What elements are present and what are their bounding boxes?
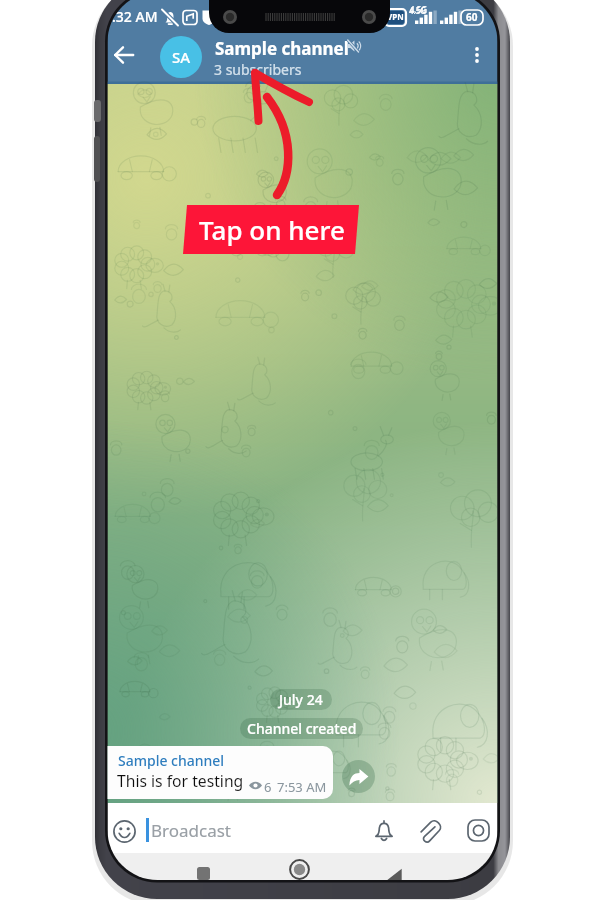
staticText: Channel created (247, 719, 357, 738)
button[interactable] (155, 33, 345, 84)
staticText: Sample channel (118, 751, 225, 770)
staticText: July 24 (279, 690, 323, 709)
button[interactable]: Back (359, 857, 429, 880)
button[interactable]: Share (342, 760, 375, 793)
staticText: VPN (387, 11, 404, 22)
staticText: 3 subscribers (214, 60, 302, 79)
button[interactable]: July 24 (270, 689, 332, 710)
staticText: 7:53 AM (277, 778, 327, 796)
staticText: 4.5G (410, 4, 428, 15)
staticText: 60 (466, 10, 478, 24)
button[interactable]: Attach (410, 812, 447, 849)
staticText: Broadcast (151, 819, 231, 842)
staticText: 9:32 AM (104, 7, 158, 26)
button[interactable]: Home (264, 857, 334, 880)
button[interactable]: Recents (168, 857, 238, 880)
button[interactable]: Camera (460, 812, 497, 849)
staticText: This is for testing (117, 770, 244, 791)
button[interactable]: Sample channel (100, 746, 333, 799)
button[interactable]: Emoji (105, 812, 143, 850)
staticText: Sample channel (215, 37, 349, 60)
button[interactable]: Tap on here (182, 204, 361, 255)
staticText: 4.5G (409, 5, 427, 16)
staticText: SA (172, 47, 191, 67)
button[interactable]: Back (104, 35, 144, 75)
staticText: Tap on here (199, 212, 345, 247)
staticText: 6 (264, 778, 272, 796)
button[interactable]: More options (458, 36, 496, 74)
button[interactable]: Notifications (365, 812, 402, 849)
button[interactable]: Channel created (240, 718, 363, 739)
